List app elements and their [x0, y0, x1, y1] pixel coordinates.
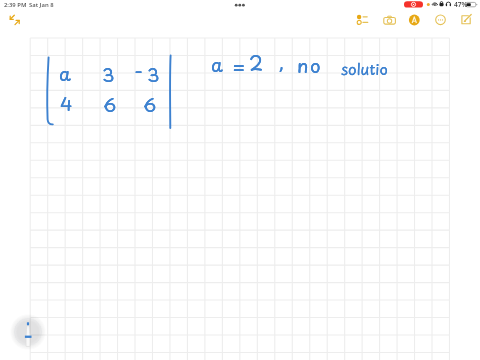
- staticText: n: [297, 51, 309, 80]
- staticText: 2: [249, 48, 264, 78]
- staticText: 6: [103, 90, 117, 119]
- staticText: 3: [147, 60, 160, 89]
- staticText: 6: [143, 90, 157, 119]
- staticText: 3: [147, 60, 160, 89]
- staticText: 4: [60, 89, 73, 118]
- staticText: o: [310, 51, 321, 80]
- button[interactable]: Filter: [350, 12, 368, 30]
- staticText: a: [59, 59, 71, 88]
- staticText: a: [211, 50, 223, 79]
- staticText: Sat Jan 8: [29, 1, 54, 9]
- staticText: n: [297, 51, 309, 80]
- button[interactable]: Collapse: [12, 13, 30, 31]
- staticText: 2: [249, 48, 264, 78]
- staticText: =: [232, 50, 246, 82]
- staticText: a: [59, 59, 71, 88]
- staticText: -: [134, 56, 144, 85]
- staticText: solutio: [341, 57, 388, 80]
- staticText: a: [211, 50, 223, 79]
- staticText: o: [310, 51, 321, 80]
- button[interactable]: More options: [452, 12, 470, 30]
- staticText: 47%: [454, 0, 468, 9]
- staticText: 3: [102, 60, 115, 89]
- staticText: 6: [103, 90, 117, 119]
- staticText: ,: [279, 47, 285, 76]
- staticText: 3: [102, 60, 115, 89]
- staticText: 4: [60, 89, 73, 118]
- button[interactable]: Camera: [388, 12, 406, 30]
- staticText: solutio: [341, 57, 388, 80]
- staticText: ,: [279, 47, 285, 76]
- staticText: =: [232, 50, 246, 82]
- staticText: -: [134, 56, 144, 85]
- staticText: 2:39 PM: [4, 1, 27, 9]
- button[interactable]: Pen tool: [10, 314, 46, 350]
- button[interactable]: Account: [420, 12, 438, 30]
- staticText: 6: [143, 90, 157, 119]
